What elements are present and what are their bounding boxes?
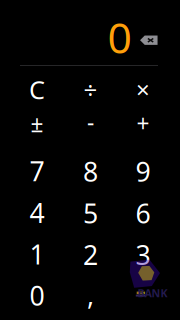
staticText: +	[137, 108, 150, 138]
button[interactable]: 0	[10, 274, 63, 315]
button[interactable]: 8	[63, 150, 117, 191]
staticText: 4	[30, 195, 45, 230]
button[interactable]: Delete	[132, 27, 166, 53]
staticText: 9	[136, 154, 151, 189]
staticText: ±	[31, 108, 44, 138]
staticText: 6	[136, 195, 151, 231]
staticText: BANK	[138, 286, 168, 300]
staticText: 1	[30, 236, 45, 272]
staticText: 0	[107, 9, 131, 65]
staticText: 7	[30, 153, 45, 189]
button[interactable]: ×	[116, 73, 169, 106]
button[interactable]: ,	[63, 284, 117, 320]
staticText: 3	[136, 237, 151, 272]
staticText: 5	[83, 195, 98, 231]
button[interactable]: 9	[116, 150, 169, 191]
button[interactable]: 3	[116, 234, 169, 275]
staticText: 0	[30, 278, 45, 313]
button[interactable]: ±	[10, 108, 63, 141]
button[interactable]: 7	[10, 150, 63, 191]
staticText: C	[29, 72, 45, 106]
button[interactable]: 6	[116, 192, 169, 233]
button[interactable]: +	[116, 106, 169, 139]
staticText: ÷	[83, 74, 97, 106]
staticText: -	[87, 106, 94, 136]
button[interactable]: ÷	[63, 73, 117, 106]
button[interactable]: -	[63, 107, 117, 140]
staticText: ,	[87, 277, 94, 312]
button[interactable]: C	[10, 73, 63, 106]
button[interactable]: 5	[63, 192, 117, 233]
staticText: ×	[136, 73, 150, 105]
button[interactable]: 2	[63, 234, 117, 275]
staticText: 8	[83, 154, 98, 189]
button[interactable]: 1	[10, 234, 63, 275]
button[interactable]: 4	[10, 192, 63, 233]
staticText: 2	[83, 237, 98, 272]
